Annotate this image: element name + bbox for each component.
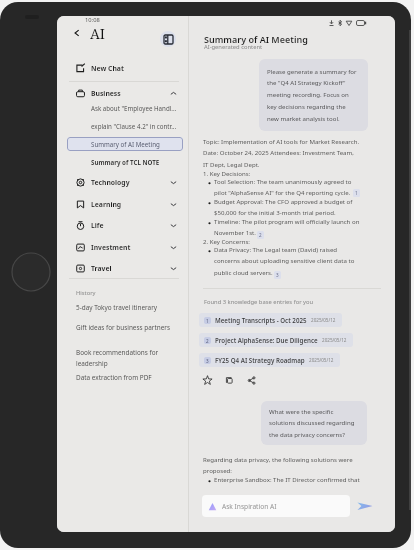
staticText: Found 3 knowledge base entries for you bbox=[204, 298, 314, 306]
staticText: Summary of TCL NOTE bbox=[91, 158, 160, 166]
staticText: 2 bbox=[259, 232, 262, 238]
staticText: 10:08 bbox=[85, 16, 100, 24]
staticText: Budget Approval: The CFO approved a budg… bbox=[214, 197, 360, 217]
button[interactable]: Summary of AI Meeting bbox=[67, 137, 183, 151]
staticText: 2025/05/12 bbox=[311, 317, 336, 323]
button[interactable]: Send bbox=[356, 497, 374, 515]
staticText: Business bbox=[91, 89, 121, 98]
staticText: Please generate a summary for the "Q4 AI… bbox=[267, 67, 358, 123]
button[interactable]: Investment bbox=[69, 237, 181, 257]
button[interactable]: Share bbox=[246, 375, 257, 386]
button[interactable]: Technology bbox=[69, 172, 181, 192]
staticText: Timeline: The pilot program will officia… bbox=[214, 217, 360, 237]
staticText: Tool Selection: The team unanimously agr… bbox=[214, 177, 360, 197]
staticText: Project AlphaSense: Due Diligence bbox=[215, 336, 318, 344]
staticText: Gift ideas for business partners bbox=[76, 323, 170, 332]
button[interactable]: Favourite bbox=[202, 375, 213, 386]
button[interactable]: What were the specific solutions discuss… bbox=[261, 401, 367, 445]
button[interactable]: New Chat bbox=[69, 58, 181, 78]
staticText: 2025/05/12 bbox=[309, 357, 334, 363]
staticText: Data Privacy: The Legal team (David) rai… bbox=[214, 245, 360, 277]
button[interactable]: Please generate a summary for the "Q4 AI… bbox=[259, 59, 368, 131]
staticText: 1 bbox=[206, 318, 209, 324]
staticText: Technology bbox=[91, 178, 130, 187]
staticText: History bbox=[76, 289, 96, 297]
button[interactable]: Book recommendations for leadership bbox=[69, 346, 185, 370]
staticText: Enterprise Sandbox: The IT Director conf… bbox=[214, 475, 360, 483]
button[interactable]: 1 bbox=[199, 313, 342, 327]
staticText: AI-generated content bbox=[204, 43, 263, 51]
staticText: 5-day Tokyo travel itinerary bbox=[76, 303, 158, 312]
staticText: Regarding data privacy, the following so… bbox=[203, 455, 368, 475]
staticText: 3 bbox=[276, 272, 279, 278]
staticText: Ask about "Employee Handl... bbox=[91, 104, 177, 112]
button[interactable]: Data extraction from PDF bbox=[69, 371, 185, 384]
button[interactable]: Ask Inspiration AI bbox=[202, 495, 350, 517]
staticText: FY25 Q4 AI Strategy Roadmap bbox=[215, 356, 305, 364]
button[interactable]: 3 bbox=[199, 353, 340, 367]
button[interactable]: Copy bbox=[224, 375, 235, 386]
staticText: 3 bbox=[206, 358, 209, 364]
staticText: Investment bbox=[91, 243, 131, 252]
button[interactable]: 5-day Tokyo travel itinerary bbox=[69, 301, 185, 314]
button[interactable]: Travel bbox=[69, 258, 181, 278]
button[interactable]: Summary of TCL NOTE bbox=[69, 154, 185, 170]
staticText: Topic: Implementation of AI tools for Ma… bbox=[203, 137, 360, 169]
button[interactable]: Back bbox=[71, 27, 83, 39]
staticText: 2. Key Concerns: bbox=[203, 237, 250, 245]
button[interactable]: Gift ideas for business partners bbox=[69, 321, 185, 334]
staticText: Ask Inspiration AI bbox=[222, 502, 277, 511]
button[interactable]: Toggle side panel bbox=[160, 31, 176, 47]
staticText: Travel bbox=[91, 264, 112, 273]
staticText: 1 bbox=[355, 190, 358, 196]
staticText: Meeting Transcripts - Oct 2025 bbox=[215, 316, 307, 324]
button[interactable]: explain "Clause 4.2" in contr... bbox=[69, 118, 185, 134]
staticText: explain "Clause 4.2" in contr... bbox=[91, 122, 177, 130]
button[interactable]: Life bbox=[69, 215, 181, 235]
staticText: 1. Key Decisions: bbox=[203, 169, 251, 177]
staticText: AI bbox=[90, 24, 106, 43]
staticText: Life bbox=[91, 221, 104, 230]
staticText: Summary of AI Meeting bbox=[91, 140, 160, 148]
staticText: Learning bbox=[91, 200, 122, 209]
staticText: Book recommendations for leadership bbox=[76, 348, 159, 368]
button[interactable]: 2 bbox=[199, 333, 353, 347]
button[interactable]: Learning bbox=[69, 194, 181, 214]
staticText: What were the specific solutions discuss… bbox=[269, 407, 360, 439]
button[interactable]: Ask about "Employee Handl... bbox=[69, 100, 185, 116]
staticText: Data extraction from PDF bbox=[76, 373, 152, 382]
staticText: 2025/05/12 bbox=[322, 337, 347, 343]
staticText: 2 bbox=[206, 338, 209, 344]
staticText: Summary of AI Meeting bbox=[204, 33, 308, 45]
button[interactable]: Business bbox=[69, 83, 181, 103]
staticText: New Chat bbox=[91, 64, 124, 73]
